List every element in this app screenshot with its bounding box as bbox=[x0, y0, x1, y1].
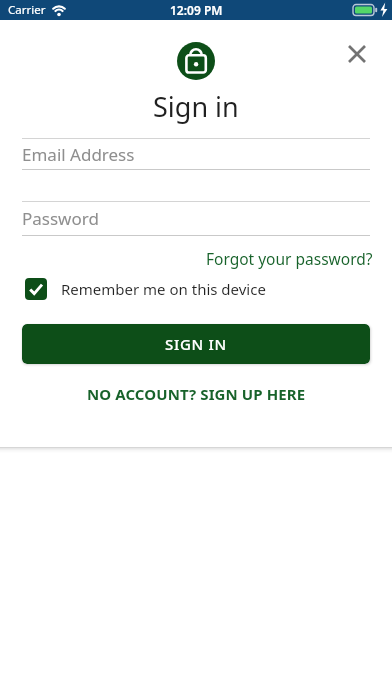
button[interactable]: Password bbox=[22, 202, 370, 235]
staticText: Carrier bbox=[8, 2, 46, 18]
button[interactable]: Email Address bbox=[22, 139, 370, 169]
button[interactable]: NO ACCOUNT? SIGN UP HERE bbox=[87, 384, 306, 404]
staticText: Email Address bbox=[22, 143, 135, 166]
staticText: Password bbox=[22, 207, 99, 230]
button[interactable]: SIGN IN bbox=[22, 324, 370, 364]
button[interactable]: Forgot your password? bbox=[206, 248, 373, 269]
staticText: SIGN IN bbox=[165, 334, 227, 354]
staticText: Forgot your password? bbox=[206, 248, 373, 269]
staticText: Remember me on this device bbox=[61, 279, 266, 299]
staticText: 12:09 PM bbox=[170, 2, 223, 18]
button[interactable]: Remember me on this device bbox=[25, 278, 392, 300]
button[interactable] bbox=[341, 38, 373, 70]
staticText: Sign in bbox=[153, 88, 239, 125]
staticText: NO ACCOUNT? SIGN UP HERE bbox=[87, 384, 306, 404]
